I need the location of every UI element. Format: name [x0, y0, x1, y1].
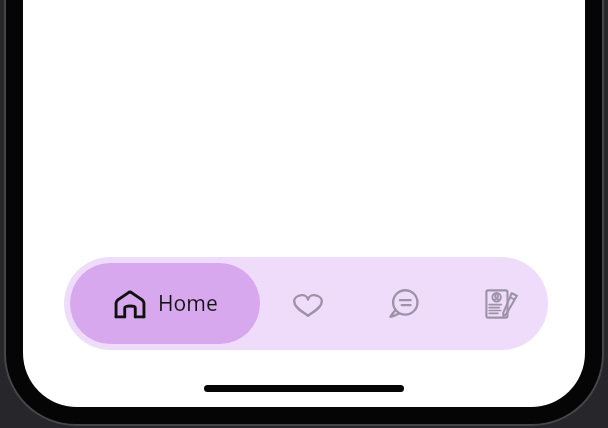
button[interactable]: Messages: [356, 257, 452, 350]
button[interactable]: Home: [70, 263, 260, 344]
button[interactable]: Profile: [452, 257, 548, 350]
button[interactable]: Favorites: [260, 257, 356, 350]
staticText: Home: [158, 289, 218, 318]
